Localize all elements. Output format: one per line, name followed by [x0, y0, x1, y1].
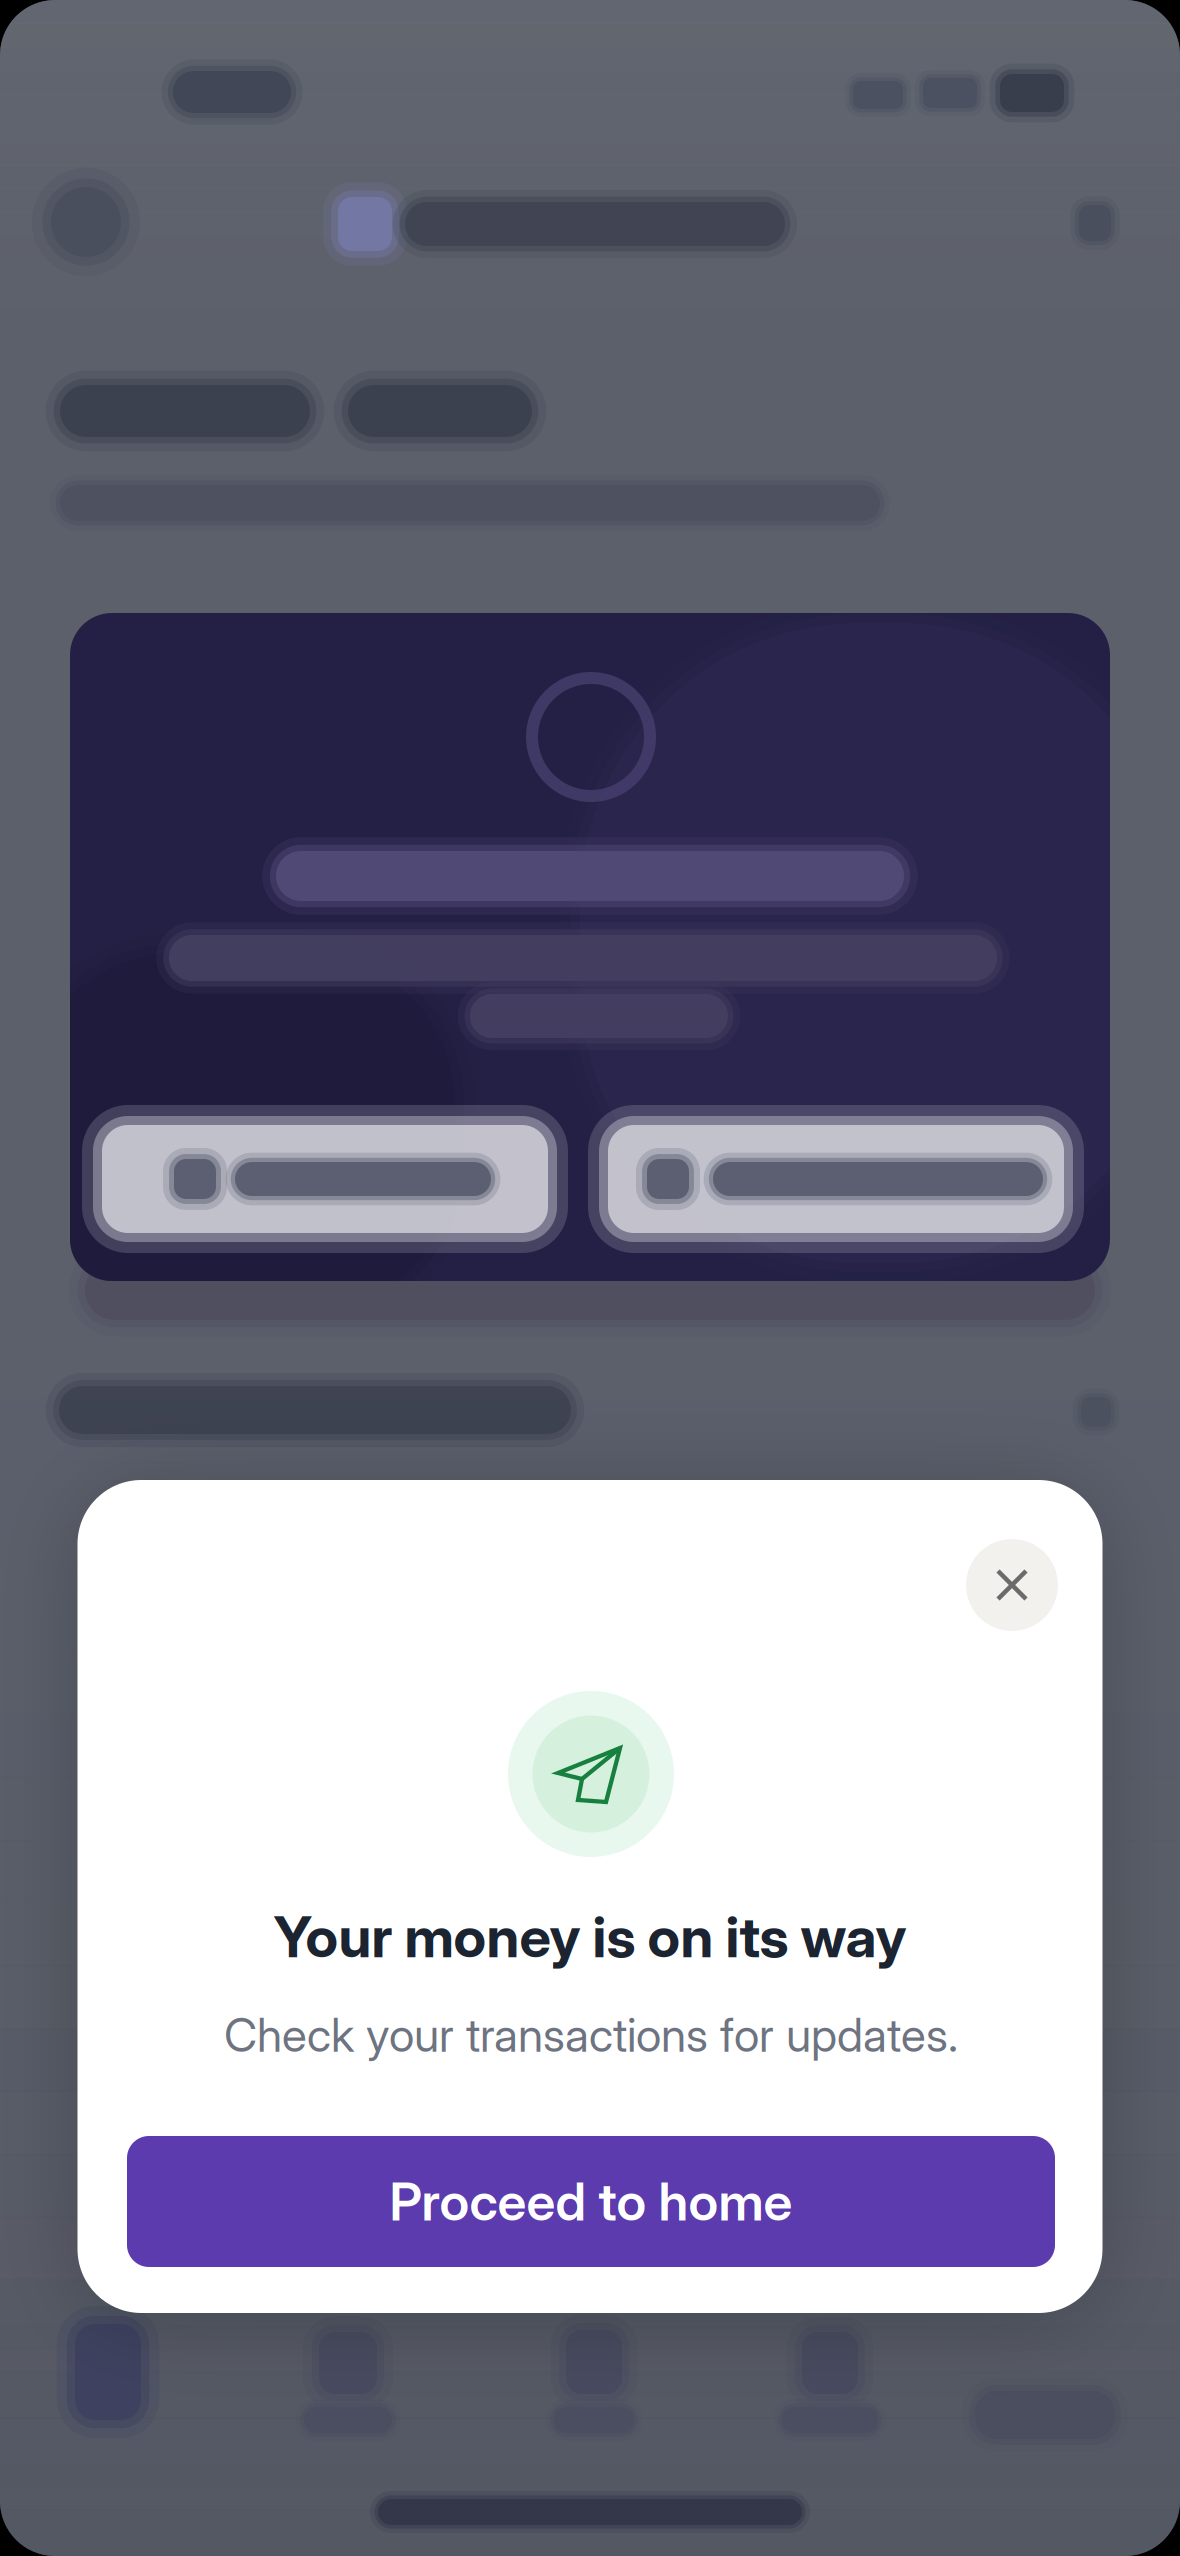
staticText: Check your transactions for updates.: [224, 2007, 958, 2063]
button[interactable]: Close: [966, 1539, 1058, 1631]
staticText: Proceed to home: [389, 2170, 792, 2233]
staticText: Your money is on its way: [273, 1903, 906, 1971]
button[interactable]: Proceed to home: [127, 2136, 1055, 2267]
